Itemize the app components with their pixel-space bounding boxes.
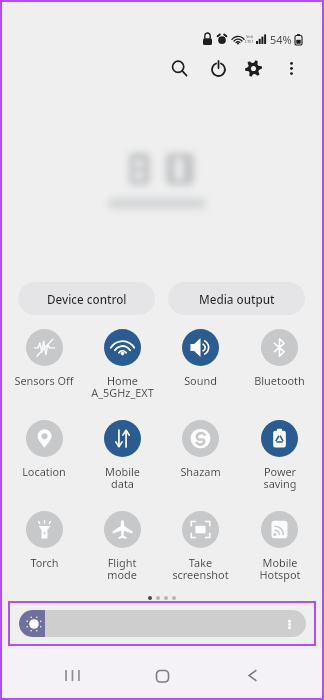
button[interactable]: Recents: [27, 649, 117, 700]
button[interactable]: Home: [117, 649, 207, 700]
staticText: Flight mode: [107, 555, 137, 582]
staticText: Shazam: [180, 464, 221, 479]
staticText: Device control: [47, 291, 127, 307]
button[interactable]: Back: [207, 649, 297, 700]
button[interactable]: Power off: [206, 56, 230, 80]
button[interactable]: More options: [279, 56, 303, 80]
button[interactable]: Sound: [161, 325, 240, 416]
button[interactable]: Device control: [18, 282, 155, 315]
button[interactable]: Search: [167, 56, 191, 80]
staticText: Sound: [184, 373, 217, 388]
button[interactable]: Bluetooth: [240, 325, 319, 416]
button[interactable]: Mobile Hotspot: [240, 507, 319, 598]
button[interactable]: Torch: [5, 507, 83, 598]
staticText: Take screenshot: [172, 555, 229, 582]
button[interactable]: Mobile data: [83, 416, 161, 507]
staticText: Media output: [199, 291, 275, 307]
staticText: Location: [22, 464, 66, 479]
button[interactable]: Take screenshot: [161, 507, 240, 598]
staticText: Mobile Hotspot: [259, 555, 301, 582]
button[interactable]: Sensors Off: [5, 325, 83, 416]
staticText: Volt: [246, 34, 254, 39]
button[interactable]: Media output: [168, 282, 305, 315]
staticText: LTE1: [245, 39, 254, 44]
staticText: Mobile data: [105, 464, 140, 491]
staticText: Torch: [30, 555, 59, 570]
button[interactable]: Home A_5GHz_EXT: [83, 325, 161, 416]
staticText: Sensors Off: [14, 373, 74, 388]
staticText: Home A_5GHz_EXT: [91, 373, 154, 400]
button[interactable]: Flight mode: [83, 507, 161, 598]
button[interactable]: Location: [5, 416, 83, 507]
staticText: Bluetooth: [254, 373, 305, 388]
button[interactable]: Brightness options: [281, 616, 297, 632]
staticText: 54%: [270, 32, 292, 47]
button[interactable]: Power saving: [240, 416, 319, 507]
button[interactable]: Settings: [241, 56, 265, 80]
button[interactable]: Shazam: [161, 416, 240, 507]
button[interactable]: Brightness options: [19, 610, 306, 637]
staticText: Power saving: [263, 464, 297, 491]
